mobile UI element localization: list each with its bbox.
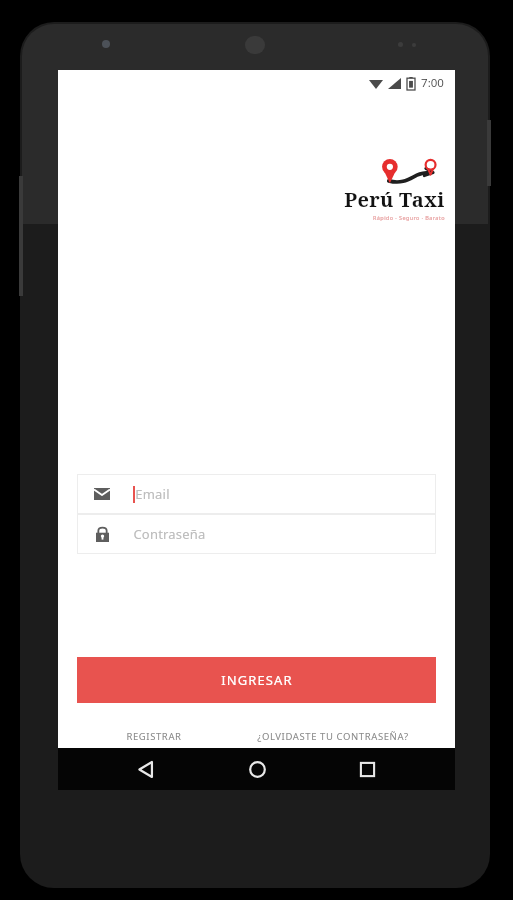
button[interactable]: Contraseña [77,514,436,554]
staticText: ¿OLVIDASTE TU CONTRASEÑA? [257,730,409,743]
staticText: 7:00 [421,75,444,91]
button[interactable]: INGRESAR [77,657,436,703]
staticText: Contraseña [133,525,206,543]
button[interactable]: Recent apps [344,748,390,790]
staticText: Perú Taxi [344,186,445,213]
button[interactable]: ¿OLVIDASTE TU CONTRASEÑA? [230,730,436,743]
staticText: INGRESAR [221,671,293,689]
button[interactable]: Back [123,748,169,790]
staticText: Email [135,485,170,503]
button[interactable]: REGISTRAR [77,730,230,743]
staticText: Rápido · Seguro · Barato [373,214,445,221]
button[interactable]: Home [234,748,280,790]
button[interactable]: Email [77,474,436,514]
staticText: REGISTRAR [126,730,182,743]
